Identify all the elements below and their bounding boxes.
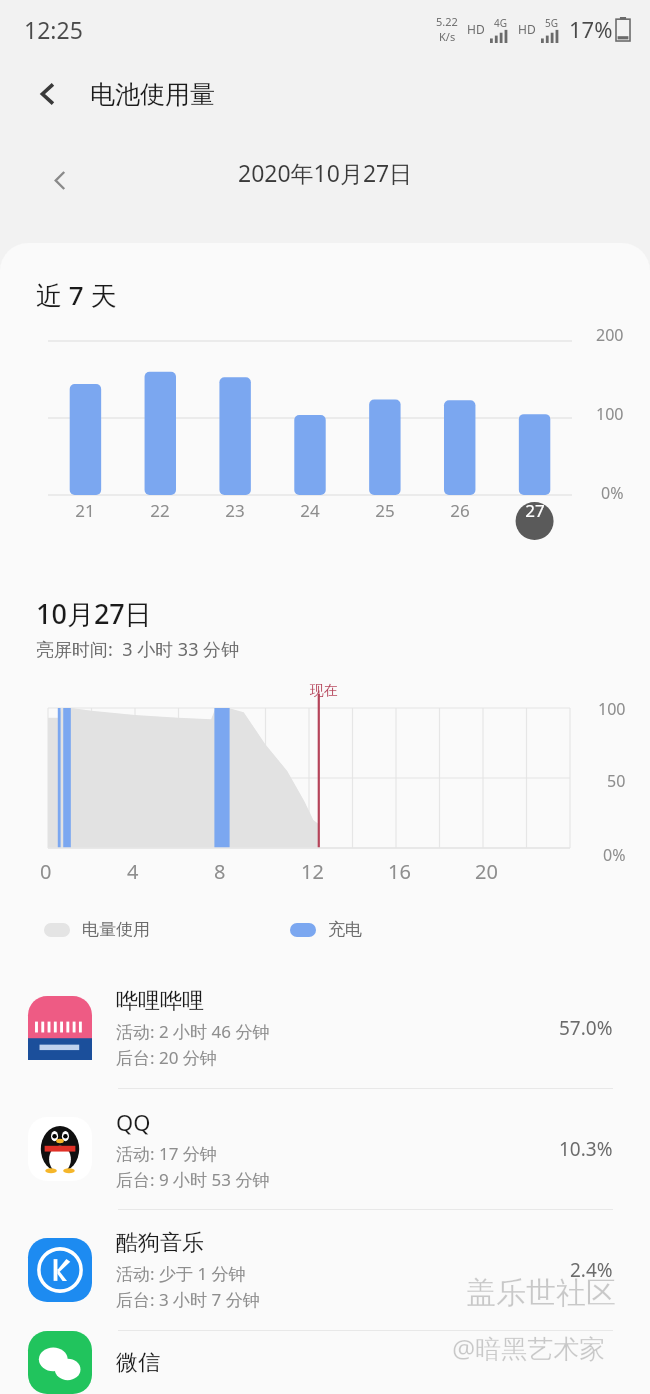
staticText: HD: [467, 21, 485, 37]
staticText: 0%: [601, 482, 624, 504]
staticText: 26: [450, 499, 470, 522]
staticText: 活动: 少于 1 分钟: [116, 1262, 246, 1285]
staticText: 活动: 2 小时 46 分钟: [116, 1020, 270, 1043]
staticText: 2020年10月27日: [238, 157, 413, 188]
staticText: 4: [127, 858, 139, 885]
staticText: 0: [40, 858, 52, 885]
staticText: 25: [375, 499, 395, 522]
staticText: HD: [518, 21, 536, 37]
staticText: 50: [607, 770, 626, 792]
button[interactable]: 酷狗音乐: [0, 1210, 650, 1330]
staticText: 20: [475, 858, 498, 885]
staticText: 27: [525, 499, 545, 522]
staticText: 电池使用量: [90, 79, 215, 110]
staticText: 后台: 20 分钟: [116, 1046, 217, 1069]
staticText: QQ: [116, 1107, 151, 1137]
staticText: 100: [598, 698, 626, 720]
staticText: 23: [225, 499, 245, 522]
staticText: 100: [596, 403, 624, 425]
staticText: 8: [214, 858, 226, 885]
staticText: 盖乐世社区: [466, 1274, 616, 1312]
staticText: 5.22: [436, 14, 458, 29]
staticText: 17%: [569, 14, 613, 44]
button[interactable]: 哗哩哗哩: [0, 968, 650, 1088]
staticText: 10.3%: [559, 1136, 613, 1162]
staticText: 4G: [494, 16, 507, 30]
button[interactable]: 充电: [290, 919, 362, 940]
staticText: 电量使用: [82, 919, 150, 940]
button[interactable]: Previous day: [32, 152, 88, 208]
staticText: 21: [75, 499, 95, 522]
staticText: 12: [301, 858, 324, 885]
staticText: 22: [150, 499, 170, 522]
button[interactable]: Back: [18, 63, 80, 125]
staticText: K/s: [439, 29, 456, 44]
staticText: 12:25: [24, 14, 83, 45]
staticText: 24: [300, 499, 320, 522]
staticText: 亮屏时间: 3 小时 33 分钟: [36, 637, 240, 662]
staticText: @暗黑艺术家: [452, 1330, 606, 1366]
staticText: 后台: 9 小时 53 分钟: [116, 1168, 270, 1191]
button[interactable]: QQ: [0, 1089, 650, 1209]
staticText: 0%: [603, 844, 626, 866]
staticText: 酷狗音乐: [116, 1229, 204, 1257]
staticText: 近 7 天: [36, 277, 117, 313]
staticText: 现在: [310, 682, 338, 700]
staticText: 2.4%: [570, 1257, 613, 1283]
staticText: 5G: [545, 16, 558, 30]
button[interactable]: 电量使用: [44, 919, 150, 940]
staticText: 200: [596, 324, 624, 346]
staticText: 充电: [328, 919, 362, 940]
staticText: 57.0%: [559, 1015, 613, 1041]
button[interactable]: 微信: [0, 1331, 650, 1394]
staticText: 10月27日: [36, 595, 152, 632]
staticText: 哗哩哗哩: [116, 987, 204, 1015]
staticText: 活动: 17 分钟: [116, 1142, 217, 1165]
staticText: 微信: [116, 1349, 160, 1377]
staticText: 16: [388, 858, 411, 885]
staticText: 后台: 3 小时 7 分钟: [116, 1288, 260, 1311]
